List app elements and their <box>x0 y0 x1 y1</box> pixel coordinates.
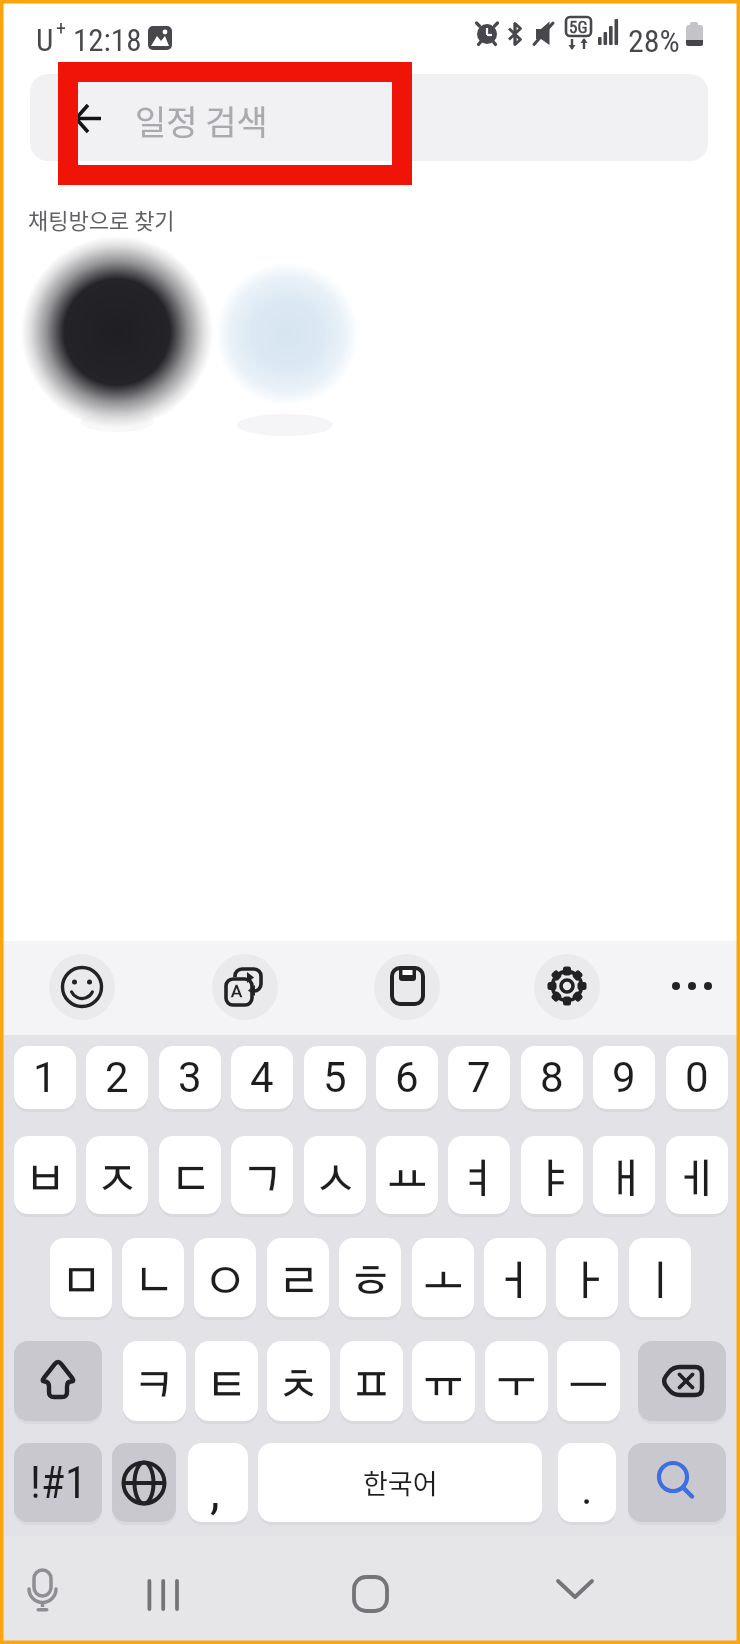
staticText: 1 <box>33 1053 57 1102</box>
button[interactable] <box>49 954 115 1020</box>
button[interactable]: ㅠ <box>412 1341 475 1421</box>
staticText: ㅛ <box>387 1160 428 1201</box>
button[interactable] <box>534 954 600 1020</box>
staticText: ㄷ <box>170 1160 211 1201</box>
button[interactable] <box>14 1341 102 1421</box>
button[interactable]: 5 <box>304 1046 366 1109</box>
button[interactable]: 8 <box>521 1046 583 1109</box>
staticText: 8 <box>540 1053 564 1102</box>
button[interactable]: 3 <box>159 1046 221 1109</box>
button[interactable]: ㄱ <box>231 1136 293 1214</box>
staticText: ㄴ <box>133 1262 174 1303</box>
button[interactable]: ㅊ <box>267 1341 330 1421</box>
button[interactable] <box>133 1560 193 1620</box>
staticText: ㅅ <box>315 1160 356 1201</box>
button[interactable] <box>545 1560 605 1620</box>
staticText: 6 <box>395 1053 419 1102</box>
staticText: 4 <box>250 1053 274 1102</box>
button[interactable]: ㅣ <box>629 1238 691 1317</box>
button[interactable]: ㅌ <box>195 1341 258 1421</box>
button[interactable]: 7 <box>448 1046 510 1109</box>
staticText: U <box>36 22 54 58</box>
button[interactable]: 한국어 <box>258 1443 542 1522</box>
staticText: ㄱ <box>242 1160 283 1201</box>
staticText: 2 <box>105 1053 129 1102</box>
button[interactable]: ㅁ <box>50 1238 112 1317</box>
staticText: ㅠ <box>423 1366 464 1407</box>
button[interactable]: ㅑ <box>521 1136 583 1214</box>
button[interactable] <box>668 964 716 1004</box>
button[interactable]: ㅍ <box>340 1341 403 1421</box>
button[interactable]: 일정 검색 <box>30 74 708 161</box>
button[interactable]: ㅜ <box>485 1341 548 1421</box>
staticText: , <box>210 1462 220 1521</box>
button[interactable]: ㅈ <box>86 1136 148 1214</box>
button[interactable]: ㅏ <box>556 1238 618 1317</box>
button[interactable]: 0 <box>666 1046 728 1109</box>
staticText: ㅐ <box>604 1160 645 1201</box>
button[interactable]: ㅔ <box>666 1136 728 1214</box>
staticText: ㅊ <box>278 1366 319 1407</box>
staticText: ㅕ <box>459 1160 500 1201</box>
button[interactable]: ㄴ <box>122 1238 184 1317</box>
button[interactable]: ㅓ <box>484 1238 546 1317</box>
staticText: + <box>56 16 66 39</box>
staticText: ㅌ <box>206 1366 247 1407</box>
button[interactable]: 2 <box>86 1046 148 1109</box>
staticText: 5G <box>569 17 588 37</box>
staticText: 9 <box>612 1053 636 1102</box>
staticText: ㅑ <box>532 1160 573 1201</box>
button[interactable] <box>638 1341 726 1421</box>
button[interactable]: 9 <box>593 1046 655 1109</box>
staticText: ㅔ <box>677 1160 718 1201</box>
button[interactable]: ㅛ <box>376 1136 438 1214</box>
button[interactable]: 1 <box>14 1046 76 1109</box>
button[interactable] <box>374 954 440 1020</box>
button[interactable] <box>212 954 278 1020</box>
button[interactable]: . <box>558 1443 616 1522</box>
staticText: 5 <box>323 1053 347 1102</box>
button[interactable]: ㅋ <box>123 1341 186 1421</box>
button[interactable]: ㄹ <box>267 1238 329 1317</box>
staticText: !#1 <box>30 1457 87 1509</box>
button[interactable]: 4 <box>231 1046 293 1109</box>
staticText: ㅋ <box>134 1366 175 1407</box>
staticText: 한국어 <box>363 1463 438 1502</box>
staticText: ㅏ <box>567 1262 608 1303</box>
staticText: 채팅방으로 찾기 <box>28 203 175 235</box>
staticText: . <box>581 1463 593 1515</box>
button[interactable]: , <box>188 1443 248 1522</box>
staticText: ㅇ <box>205 1262 246 1303</box>
button[interactable]: ㄷ <box>159 1136 221 1214</box>
button[interactable]: ㅂ <box>14 1136 76 1214</box>
button[interactable]: ㅗ <box>412 1238 474 1317</box>
staticText: ㅗ <box>423 1262 464 1303</box>
button[interactable]: ㅐ <box>593 1136 655 1214</box>
staticText: ㅡ <box>568 1366 609 1407</box>
staticText: 7 <box>467 1053 491 1102</box>
staticText: ㅂ <box>25 1160 66 1201</box>
staticText: 12:18 <box>73 22 142 58</box>
staticText: ㅓ <box>495 1262 536 1303</box>
staticText: 3 <box>178 1053 202 1102</box>
button[interactable]: ㅡ <box>557 1341 620 1421</box>
button[interactable]: !#1 <box>14 1443 102 1522</box>
staticText: ㅜ <box>496 1366 537 1407</box>
staticText: ㅈ <box>97 1160 138 1201</box>
button[interactable]: ㅕ <box>448 1136 510 1214</box>
staticText: 일정 검색 <box>135 96 268 145</box>
button[interactable]: ㅇ <box>194 1238 256 1317</box>
staticText: 28% <box>628 22 680 60</box>
staticText: ㄹ <box>278 1262 319 1303</box>
button[interactable]: ㅅ <box>304 1136 366 1214</box>
staticText: ㅣ <box>640 1262 681 1303</box>
staticText: ㅁ <box>61 1262 102 1303</box>
button[interactable] <box>628 1443 726 1522</box>
staticText: 0 <box>685 1053 709 1102</box>
button[interactable]: ㅎ <box>339 1238 401 1317</box>
button[interactable] <box>112 1443 176 1522</box>
staticText: ㅎ <box>350 1262 391 1303</box>
button[interactable]: 6 <box>376 1046 438 1109</box>
button[interactable] <box>340 1560 400 1620</box>
button[interactable] <box>10 1560 72 1622</box>
